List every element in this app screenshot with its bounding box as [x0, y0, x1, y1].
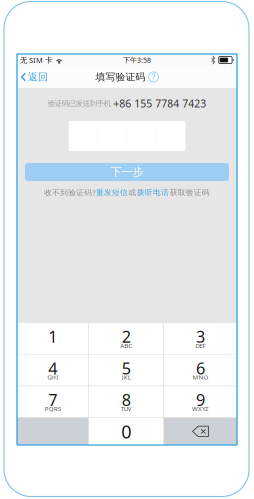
button[interactable]: 拨听电话	[137, 188, 169, 197]
staticText: 重发短信	[96, 188, 128, 197]
staticText: 下午3:58	[123, 55, 151, 65]
staticText: 2	[122, 325, 131, 348]
button[interactable]: 1	[17, 323, 88, 354]
button[interactable]: 6	[164, 355, 237, 386]
staticText: TUV	[121, 404, 132, 413]
staticText: 6	[196, 357, 205, 379]
staticText: 下一步	[110, 165, 143, 179]
staticText: 1	[48, 325, 57, 348]
staticText: 返回	[28, 71, 48, 83]
staticText: MNO	[192, 373, 208, 381]
staticText: DEF	[195, 341, 205, 350]
staticText: 获取验证码	[170, 188, 210, 197]
button[interactable]: 0	[89, 418, 163, 445]
staticText: 收不到验证码?	[44, 187, 95, 198]
button[interactable]: 8	[89, 386, 163, 417]
button[interactable]: Delete	[164, 418, 237, 445]
staticText: 4	[48, 357, 57, 379]
staticText: 验证码已发送到手机	[48, 99, 111, 108]
staticText: 8	[122, 389, 131, 411]
staticText: 0	[121, 419, 131, 444]
staticText: 拨听电话	[137, 188, 169, 197]
staticText: PQRS	[45, 404, 61, 413]
staticText: GHI	[47, 373, 58, 381]
button[interactable]: 3	[164, 323, 237, 354]
button[interactable]: 2	[89, 323, 163, 354]
button[interactable]: 5	[89, 355, 163, 386]
staticText: 或	[128, 188, 136, 197]
staticText: +86 155 7784 7423	[113, 96, 206, 111]
button[interactable]: 返回	[17, 66, 54, 88]
staticText: 填写验证码	[95, 71, 145, 83]
staticText: 5	[122, 357, 131, 379]
button[interactable]: 9	[164, 386, 237, 417]
staticText: JKL	[122, 373, 131, 381]
button[interactable]: 重发短信	[96, 188, 128, 197]
staticText: 3	[196, 325, 205, 348]
button[interactable]: 4	[17, 355, 88, 386]
button[interactable]: 7	[17, 386, 88, 417]
button[interactable]: 下一步	[25, 163, 229, 181]
staticText: 9	[196, 389, 205, 411]
staticText: 7	[48, 389, 57, 411]
staticText: ABC	[120, 341, 132, 350]
staticText: WXYZ	[192, 404, 209, 413]
staticText: 无 SIM 卡	[20, 55, 52, 65]
staticText: ?	[151, 71, 155, 83]
